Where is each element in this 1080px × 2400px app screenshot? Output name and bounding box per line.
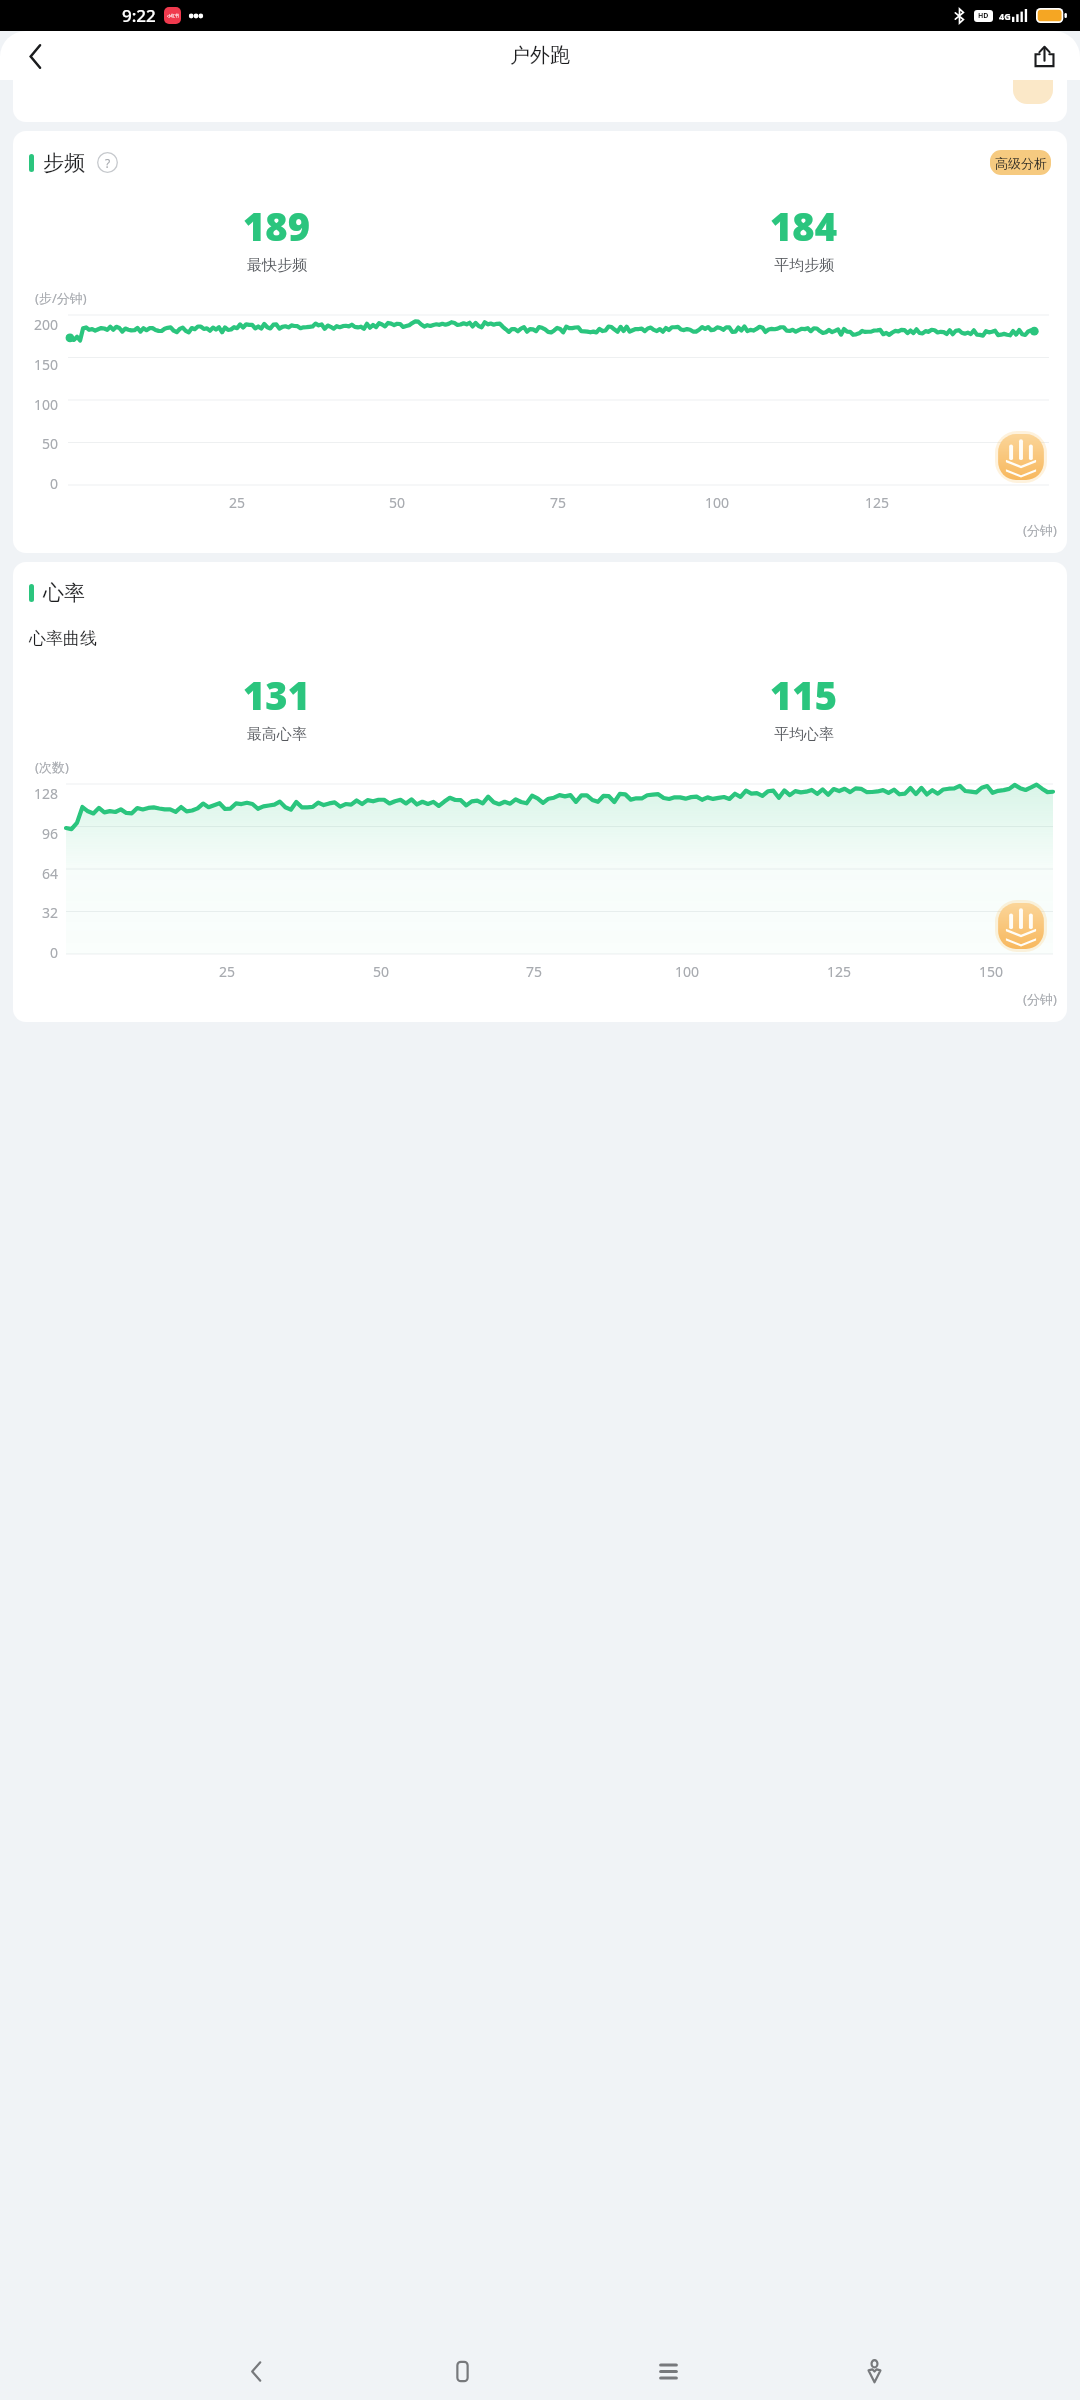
- staticText: 96: [42, 824, 59, 843]
- staticText: 心率曲线: [29, 628, 97, 649]
- button[interactable]: 菜单: [565, 2343, 771, 2400]
- staticText: 128: [34, 784, 59, 803]
- staticText: 131: [243, 669, 310, 721]
- staticText: 9:22: [122, 4, 156, 27]
- staticText: 0: [50, 943, 59, 962]
- button[interactable]: 说明: [94, 149, 121, 176]
- button[interactable]: 分享: [1021, 33, 1067, 79]
- button[interactable]: 返回: [153, 2343, 359, 2400]
- button[interactable]: 查看详情: [995, 431, 1047, 483]
- button[interactable]: 查看详情: [995, 900, 1047, 952]
- staticText: 4G: [999, 10, 1011, 22]
- button[interactable]: 高级分析: [990, 150, 1051, 175]
- staticText: 150: [979, 962, 1004, 981]
- staticText: 平均心率: [774, 725, 834, 744]
- staticText: 32: [42, 903, 59, 922]
- staticText: 平均步频: [774, 256, 834, 275]
- staticText: 最高心率: [247, 725, 307, 744]
- staticText: 75: [526, 962, 543, 981]
- staticText: 25: [219, 962, 236, 981]
- staticText: 184: [770, 200, 837, 252]
- staticText: (分钟): [1023, 990, 1057, 1008]
- staticText: 100: [675, 962, 700, 981]
- staticText: 最快步频: [247, 256, 307, 275]
- staticText: 100: [34, 395, 59, 414]
- staticText: 户外跑: [510, 43, 570, 68]
- staticText: 50: [42, 434, 59, 453]
- staticText: (分钟): [1023, 521, 1057, 539]
- staticText: 步频: [43, 150, 85, 176]
- staticText: 64: [42, 864, 59, 883]
- staticText: 50: [389, 493, 406, 512]
- staticText: 189: [243, 200, 310, 252]
- staticText: (次数): [35, 758, 69, 776]
- staticText: 115: [770, 669, 837, 721]
- button[interactable]: 返回: [12, 33, 58, 79]
- staticText: 心率: [43, 580, 85, 606]
- staticText: 200: [34, 315, 59, 334]
- staticText: 100: [705, 493, 730, 512]
- staticText: 75: [550, 493, 567, 512]
- staticText: 150: [34, 355, 59, 374]
- staticText: 125: [827, 962, 852, 981]
- button[interactable]: 我的: [771, 2343, 977, 2400]
- staticText: 50: [373, 962, 390, 981]
- staticText: 25: [229, 493, 246, 512]
- staticText: ?: [105, 155, 111, 171]
- staticText: 125: [865, 493, 890, 512]
- staticText: 0: [50, 474, 59, 493]
- staticText: (步/分钟): [35, 289, 87, 307]
- staticText: 小红书: [167, 13, 179, 18]
- button[interactable]: 主页: [359, 2343, 565, 2400]
- staticText: 高级分析: [995, 155, 1047, 171]
- staticText: HD: [978, 11, 989, 21]
